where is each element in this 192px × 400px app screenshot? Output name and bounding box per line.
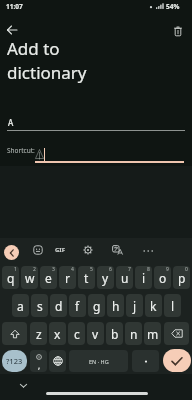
staticText: , [38, 360, 41, 371]
button[interactable]: ?123 [2, 350, 27, 372]
staticText: o [159, 270, 167, 286]
staticText: 9 [166, 266, 169, 273]
button[interactable] [33, 245, 43, 255]
button[interactable]: y [97, 266, 114, 289]
button[interactable] [2, 322, 27, 345]
button[interactable]: b [106, 322, 123, 345]
staticText: ?123 [6, 356, 23, 366]
staticText: g [93, 298, 101, 314]
button[interactable]: p [173, 266, 190, 289]
staticText: q [7, 270, 15, 286]
button[interactable]: q [2, 266, 19, 289]
staticText: 7 [128, 266, 131, 273]
button[interactable] [164, 322, 189, 345]
button[interactable]: x [49, 322, 66, 345]
staticText: y [102, 270, 109, 286]
button[interactable]: , [30, 350, 47, 372]
staticText: 4 [71, 266, 74, 273]
staticText: h [112, 298, 120, 314]
staticText: p [178, 270, 186, 286]
button[interactable]: t [78, 266, 95, 289]
button[interactable] [163, 349, 191, 372]
button[interactable]: f [69, 294, 86, 317]
staticText: 3 [52, 266, 55, 273]
button[interactable]: s [31, 294, 48, 317]
staticText: 54% [166, 2, 180, 11]
staticText: 2 [33, 266, 36, 273]
button[interactable]: r [59, 266, 76, 289]
staticText: e [45, 270, 52, 286]
button[interactable]: m [144, 322, 161, 345]
staticText: 1 [14, 266, 17, 273]
staticText: v [92, 326, 99, 342]
staticText: 0 [185, 266, 188, 273]
staticText: 8 [147, 266, 150, 273]
button[interactable] [83, 245, 93, 255]
staticText: 5 [90, 266, 93, 273]
staticText: t [84, 270, 89, 286]
button[interactable]: v [87, 322, 104, 345]
button[interactable] [112, 245, 123, 255]
staticText: z [36, 326, 42, 342]
button[interactable]: a [12, 294, 29, 317]
button[interactable]: l [164, 294, 181, 317]
staticText: d [55, 298, 63, 314]
staticText: s [37, 298, 43, 314]
staticText: j [133, 298, 137, 314]
button[interactable]: w [21, 266, 38, 289]
button[interactable]: n [125, 322, 142, 345]
staticText: u [121, 270, 129, 286]
button[interactable]: h [107, 294, 124, 317]
staticText: Shortcut: [7, 146, 35, 155]
staticText: w [25, 270, 35, 286]
button[interactable]: k [145, 294, 162, 317]
staticText: f [75, 298, 80, 314]
button[interactable] [170, 23, 186, 39]
staticText: Add to dictionary [7, 37, 87, 84]
button[interactable] [4, 245, 19, 260]
staticText: EN · HG [89, 358, 109, 365]
button[interactable]: j [126, 294, 143, 317]
button[interactable] [49, 350, 66, 372]
staticText: c [74, 326, 80, 342]
button[interactable]: GIF [52, 245, 68, 255]
button[interactable]: u [116, 266, 133, 289]
staticText: m [147, 326, 159, 342]
staticText: l [171, 298, 175, 314]
button[interactable]: o [154, 266, 171, 289]
button[interactable]: c [68, 322, 85, 345]
button[interactable]: i [135, 266, 152, 289]
button[interactable]: g [88, 294, 105, 317]
staticText: r [65, 270, 70, 286]
staticText: a [17, 298, 24, 314]
staticText: n [130, 326, 138, 342]
button[interactable]: e [40, 266, 57, 289]
staticText: x [54, 326, 61, 342]
button[interactable]: EN · HG [69, 350, 128, 372]
staticText: 6 [109, 266, 112, 273]
staticText: b [111, 326, 119, 342]
button[interactable]: z [30, 322, 47, 345]
staticText: A [8, 117, 14, 128]
staticText: k [150, 298, 157, 314]
button[interactable] [132, 350, 159, 372]
button[interactable] [4, 22, 20, 38]
staticText: i [142, 270, 146, 286]
button[interactable]: d [50, 294, 67, 317]
staticText: 11:07 [6, 2, 23, 11]
staticText: GIF [55, 246, 65, 254]
